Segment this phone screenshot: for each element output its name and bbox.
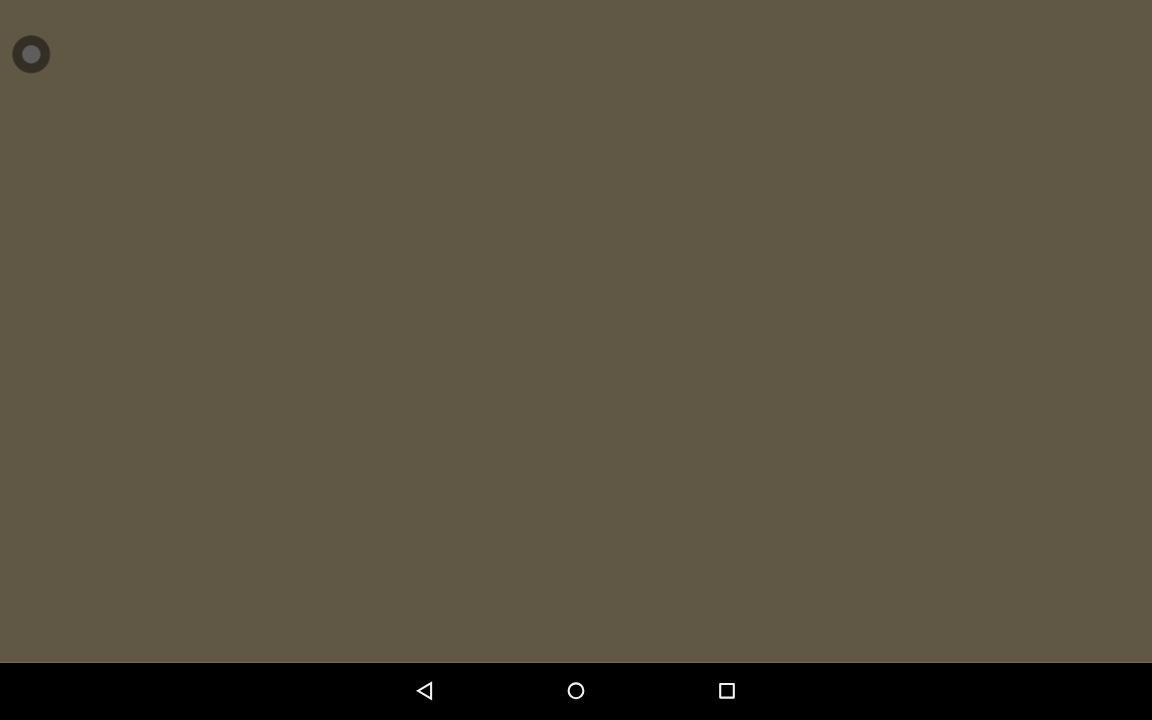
button[interactable]: Back (397, 663, 453, 720)
button[interactable]: Home (548, 663, 604, 720)
button[interactable]: Loading (12, 35, 50, 73)
button[interactable]: Recent apps (699, 663, 755, 720)
